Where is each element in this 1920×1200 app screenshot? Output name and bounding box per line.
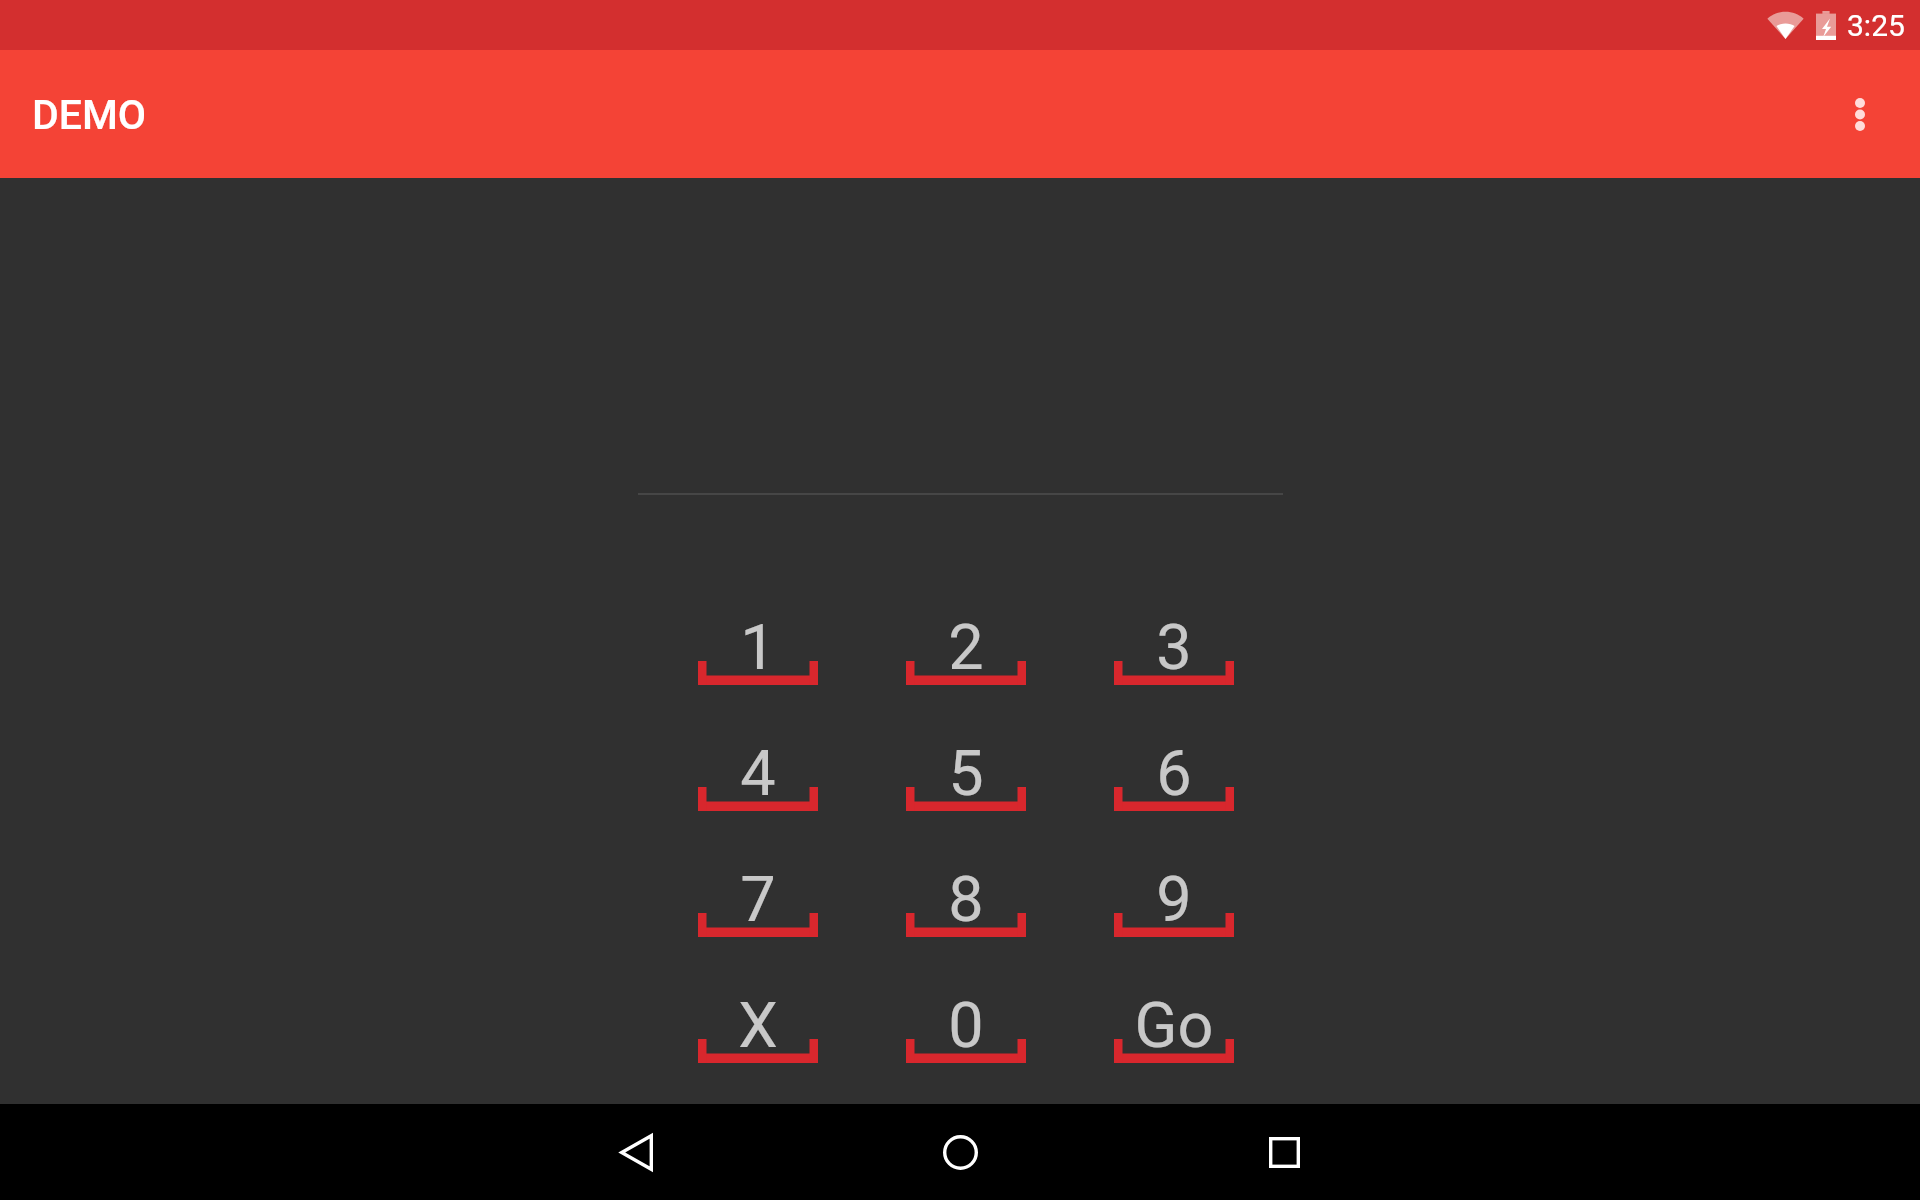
staticText: 5 bbox=[906, 737, 1026, 811]
button[interactable]: Go bbox=[1114, 967, 1234, 1063]
button[interactable]: 9 bbox=[1114, 841, 1234, 937]
button[interactable]: More options bbox=[1812, 66, 1908, 162]
button[interactable]: 8 bbox=[906, 841, 1026, 937]
button[interactable]: X bbox=[698, 967, 818, 1063]
staticText: 0 bbox=[906, 989, 1026, 1063]
button[interactable]: 6 bbox=[1114, 715, 1234, 811]
button[interactable]: 0 bbox=[906, 967, 1026, 1063]
staticText: 3:25 bbox=[1847, 8, 1905, 43]
staticText: 8 bbox=[906, 863, 1026, 937]
button[interactable]: Back bbox=[588, 1104, 684, 1200]
staticText: Go bbox=[1114, 989, 1234, 1063]
button[interactable]: 3 bbox=[1114, 589, 1234, 685]
button[interactable]: 7 bbox=[698, 841, 818, 937]
other: Battery charging bbox=[1816, 11, 1836, 40]
staticText: 1 bbox=[698, 611, 818, 685]
staticText: DEMO bbox=[32, 91, 147, 139]
staticText: 9 bbox=[1114, 863, 1234, 937]
other: Wi-Fi bbox=[1767, 10, 1804, 39]
button[interactable]: 1 bbox=[698, 589, 818, 685]
button[interactable]: Home bbox=[912, 1104, 1008, 1200]
button[interactable]: 5 bbox=[906, 715, 1026, 811]
staticText: 4 bbox=[698, 737, 818, 811]
staticText: X bbox=[698, 989, 818, 1063]
staticText: 3 bbox=[1114, 611, 1234, 685]
staticText: 7 bbox=[698, 863, 818, 937]
button[interactable]: 2 bbox=[906, 589, 1026, 685]
staticText: 6 bbox=[1114, 737, 1234, 811]
staticText: 2 bbox=[906, 611, 1026, 685]
button[interactable]: 4 bbox=[698, 715, 818, 811]
button[interactable]: Recent apps bbox=[1236, 1104, 1332, 1200]
